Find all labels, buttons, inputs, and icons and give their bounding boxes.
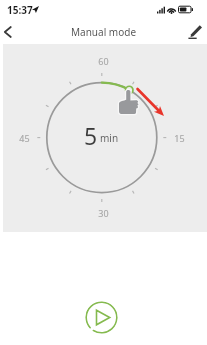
button[interactable]: Edit <box>182 19 207 44</box>
staticText: 15:37 <box>7 3 33 17</box>
staticText: 30 <box>98 207 109 219</box>
staticText: 60 <box>98 55 109 67</box>
staticText: Manual mode <box>71 25 137 39</box>
staticText: 5 <box>84 120 98 151</box>
button[interactable]: Back <box>0 19 16 44</box>
staticText: 45 <box>19 132 30 144</box>
button[interactable]: Start timer <box>85 301 118 334</box>
staticText: min <box>100 131 119 145</box>
staticText: 15 <box>174 132 185 144</box>
